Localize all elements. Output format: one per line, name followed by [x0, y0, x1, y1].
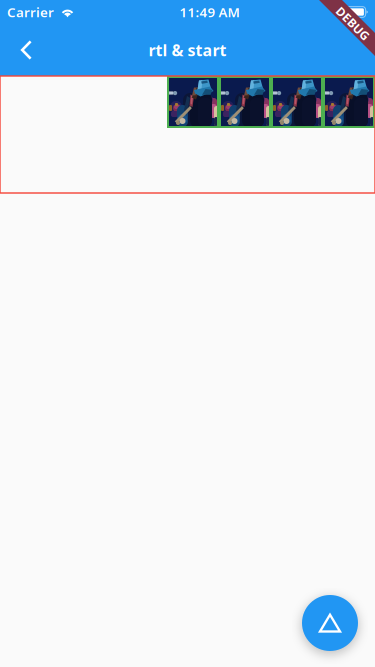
- staticText: 11:49 AM: [180, 3, 240, 21]
- staticText: Carrier: [7, 3, 54, 21]
- button[interactable]: Action: [302, 595, 358, 651]
- button[interactable]: Back: [4, 28, 48, 72]
- staticText: DEBUG: [332, 15, 374, 31]
- staticText: rtl & start: [148, 39, 226, 61]
